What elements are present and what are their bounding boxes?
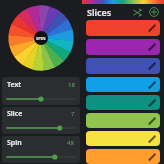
staticText: Slices bbox=[87, 6, 112, 18]
button[interactable]: Slice bbox=[86, 113, 160, 128]
staticText: SPIN bbox=[36, 36, 46, 41]
button[interactable]: Slice bbox=[86, 131, 160, 146]
button[interactable]: Edit slice bbox=[146, 22, 158, 34]
staticText: 7 bbox=[71, 110, 75, 118]
staticText: 18 bbox=[68, 81, 75, 89]
button[interactable]: Slice bbox=[2, 107, 80, 134]
button[interactable]: Slice bbox=[86, 20, 160, 36]
button[interactable]: Slice bbox=[86, 149, 160, 164]
staticText: Spin bbox=[7, 138, 22, 148]
button[interactable]: Edit slice bbox=[146, 79, 158, 91]
button[interactable]: Add slice bbox=[148, 6, 160, 18]
button[interactable]: Slice bbox=[86, 95, 160, 110]
staticText: Text bbox=[7, 80, 22, 90]
button[interactable]: Edit slice bbox=[146, 60, 158, 72]
button[interactable]: Spin the wheel bbox=[7, 4, 75, 72]
button[interactable]: Spin bbox=[2, 136, 80, 163]
button[interactable]: Shuffle slices bbox=[131, 6, 143, 18]
button[interactable]: Edit slice bbox=[146, 133, 158, 145]
staticText: 4X bbox=[67, 139, 75, 147]
button[interactable]: Edit slice bbox=[146, 115, 158, 127]
button[interactable]: Edit slice bbox=[146, 41, 158, 53]
button[interactable]: Edit slice bbox=[146, 97, 158, 109]
button[interactable]: Slice bbox=[86, 77, 160, 92]
button[interactable]: Edit slice bbox=[146, 151, 158, 163]
staticText: Slice bbox=[7, 109, 23, 119]
button[interactable]: Slice bbox=[86, 39, 160, 55]
button[interactable]: Slice bbox=[86, 58, 160, 74]
button[interactable]: Text bbox=[2, 77, 80, 105]
